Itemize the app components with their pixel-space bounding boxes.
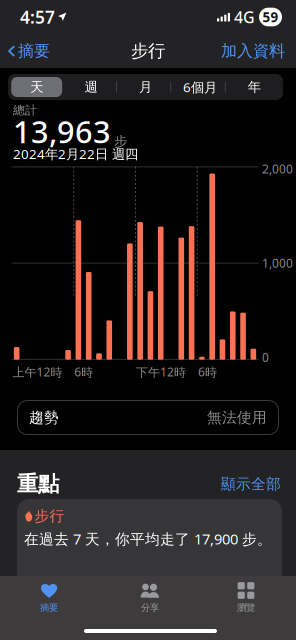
- staticText: 步: [114, 133, 127, 150]
- button[interactable]: 摘要: [0, 35, 50, 67]
- staticText: 週: [85, 79, 98, 95]
- button[interactable]: 6個月: [173, 74, 227, 100]
- staticText: 6個月: [183, 78, 217, 96]
- button[interactable]: 月: [118, 74, 173, 100]
- button[interactable]: 瀏覽: [197, 577, 295, 617]
- staticText: 2024年2月22日 週四: [13, 145, 138, 163]
- button[interactable]: 步行: [17, 499, 282, 576]
- staticText: 天: [30, 79, 43, 95]
- button[interactable]: 分享: [101, 577, 199, 617]
- staticText: 摘要: [18, 41, 50, 61]
- staticText: 摘要: [40, 602, 58, 613]
- button[interactable]: 顯示全部: [221, 475, 281, 493]
- staticText: 4:57: [20, 5, 55, 28]
- staticText: 步行: [34, 507, 64, 525]
- staticText: 總計: [13, 103, 37, 118]
- staticText: 4G: [234, 6, 255, 28]
- staticText: 分享: [141, 602, 159, 613]
- staticText: 步行: [131, 40, 165, 62]
- staticText: 2,000: [262, 161, 293, 177]
- staticText: 無法使用: [207, 408, 267, 426]
- staticText: 13,963: [13, 111, 111, 152]
- staticText: 1,000: [262, 255, 293, 271]
- staticText: 0: [262, 349, 269, 365]
- staticText: 上午12時: [12, 364, 62, 380]
- staticText: 瀏覽: [237, 602, 255, 613]
- staticText: 趨勢: [29, 408, 59, 426]
- staticText: 月: [139, 79, 152, 95]
- button[interactable]: 天: [9, 74, 64, 100]
- button[interactable]: 週: [64, 74, 118, 100]
- staticText: 加入資料: [221, 41, 285, 61]
- staticText: 顯示全部: [221, 475, 281, 493]
- staticText: 重點: [17, 471, 59, 497]
- staticText: 在過去 7 天，你平均走了 17,900 步。: [24, 529, 272, 548]
- button[interactable]: 加入資料: [221, 35, 296, 67]
- staticText: 下午12時: [136, 364, 186, 380]
- button[interactable]: 摘要: [0, 577, 98, 617]
- staticText: 年: [248, 79, 261, 95]
- button[interactable]: 趨勢: [17, 400, 279, 435]
- staticText: 59: [262, 8, 278, 26]
- staticText: 6時: [74, 364, 93, 380]
- staticText: 6時: [198, 364, 217, 380]
- button[interactable]: 年: [227, 74, 281, 100]
